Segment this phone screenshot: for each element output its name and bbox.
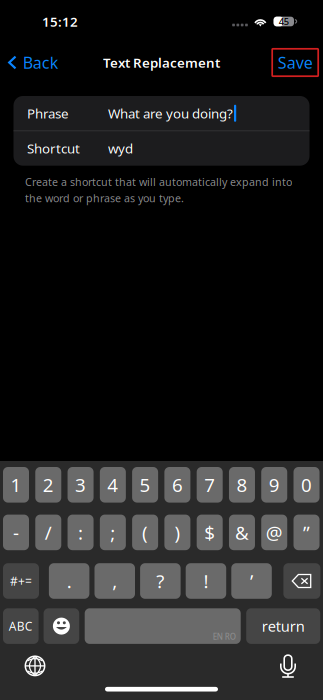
button[interactable]: ”	[293, 515, 319, 550]
staticText: 6	[172, 472, 183, 497]
button[interactable]: Save	[272, 49, 318, 76]
button[interactable]: 5	[132, 467, 158, 503]
button[interactable]: Dictation	[268, 653, 308, 679]
staticText: wyd	[108, 140, 133, 157]
staticText: :	[78, 520, 83, 545]
button[interactable]: &	[229, 515, 255, 550]
staticText: @	[266, 520, 283, 545]
button[interactable]: 4	[100, 467, 126, 503]
button[interactable]: ’	[231, 563, 272, 599]
button[interactable]: ,	[94, 563, 135, 599]
button[interactable]: ABC	[3, 608, 39, 644]
button[interactable]: )	[164, 515, 190, 550]
button[interactable]: -	[3, 515, 29, 550]
button[interactable]: 1	[3, 467, 29, 503]
button[interactable]: 3	[68, 467, 94, 503]
staticText: Phrase	[27, 104, 69, 122]
staticText: 5	[140, 472, 151, 497]
staticText: ABC	[9, 618, 33, 634]
staticText: What are you doing?	[108, 104, 233, 122]
staticText: ,	[112, 569, 117, 593]
button[interactable]: 2	[35, 467, 61, 503]
staticText: !	[203, 569, 208, 593]
button[interactable]: 8	[229, 467, 255, 503]
staticText: ’	[250, 569, 253, 593]
staticText: $	[204, 520, 215, 545]
button[interactable]: Next keyboard	[15, 653, 55, 679]
button[interactable]: :	[68, 515, 94, 550]
staticText: #+=	[10, 573, 32, 589]
button[interactable]: space	[85, 608, 241, 644]
staticText: 8	[236, 472, 247, 497]
staticText: Shortcut	[27, 140, 80, 157]
button[interactable]: .	[49, 563, 89, 599]
staticText: 0	[301, 472, 312, 497]
button[interactable]: return	[246, 608, 320, 644]
button[interactable]: Back	[0, 48, 68, 76]
staticText: 45	[279, 15, 289, 28]
staticText: EN RO	[213, 631, 236, 642]
staticText: 7	[204, 472, 215, 497]
staticText: ”	[303, 520, 310, 545]
staticText: Create a shortcut that will automaticall…	[25, 175, 292, 205]
staticText: /	[45, 520, 52, 545]
staticText: ?	[156, 569, 164, 593]
button[interactable]: #+=	[3, 563, 39, 599]
staticText: 3	[75, 472, 86, 497]
staticText: return	[262, 616, 305, 636]
staticText: Text Replacement	[103, 54, 220, 71]
button[interactable]: 7	[197, 467, 223, 503]
staticText: -	[13, 520, 19, 545]
staticText: 2	[43, 472, 54, 497]
staticText: Save	[278, 52, 313, 73]
button[interactable]: Emoji	[44, 608, 79, 644]
staticText: ;	[110, 520, 115, 545]
button[interactable]: @	[261, 515, 287, 550]
staticText: 15:12	[42, 13, 78, 30]
staticText: 1	[10, 472, 21, 497]
staticText: &	[235, 520, 249, 545]
staticText: )	[174, 520, 180, 545]
button[interactable]: !	[186, 563, 226, 599]
button[interactable]: 9	[261, 467, 287, 503]
button[interactable]: 0	[293, 467, 319, 503]
button[interactable]: /	[35, 515, 61, 550]
button[interactable]: (	[132, 515, 158, 550]
button[interactable]: 6	[164, 467, 190, 503]
button[interactable]: Delete	[283, 563, 320, 599]
staticText: .	[67, 569, 72, 593]
staticText: 9	[269, 472, 280, 497]
staticText: 4	[107, 472, 118, 497]
staticText: Back	[23, 52, 59, 73]
staticText: (	[142, 520, 148, 545]
button[interactable]: ?	[140, 563, 181, 599]
button[interactable]: ;	[100, 515, 126, 550]
button[interactable]: $	[197, 515, 223, 550]
